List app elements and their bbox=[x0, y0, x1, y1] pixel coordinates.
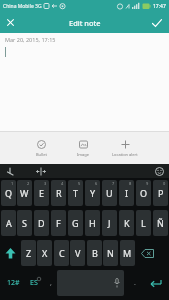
button[interactable]: J bbox=[102, 210, 117, 236]
staticText: A bbox=[6, 217, 12, 229]
staticText: Y bbox=[90, 187, 96, 199]
staticText: Z bbox=[26, 247, 32, 259]
button[interactable]: Q bbox=[1, 180, 16, 206]
button[interactable] bbox=[145, 12, 169, 33]
staticText: H bbox=[89, 217, 96, 229]
staticText: China Mobile 3G bbox=[3, 3, 42, 10]
button[interactable]: 12# bbox=[2, 270, 24, 296]
button[interactable]: Bullet bbox=[20, 132, 62, 164]
button[interactable]: X bbox=[37, 240, 52, 266]
button[interactable]: Y bbox=[85, 180, 100, 206]
staticText: G bbox=[72, 217, 79, 229]
button[interactable]: M bbox=[120, 240, 135, 266]
button[interactable]: T bbox=[68, 180, 83, 206]
button[interactable]: Image bbox=[62, 132, 104, 164]
staticText: B bbox=[92, 247, 98, 259]
button[interactable]: ES bbox=[24, 270, 44, 296]
staticText: 4 bbox=[61, 181, 64, 186]
button[interactable] bbox=[6, 167, 15, 176]
staticText: O bbox=[140, 187, 148, 199]
staticText: Image bbox=[77, 152, 90, 157]
button[interactable]: D bbox=[34, 210, 49, 236]
staticText: D bbox=[38, 217, 45, 229]
staticText: Edit note bbox=[69, 18, 101, 28]
button[interactable]: R bbox=[51, 180, 66, 206]
staticText: 8 bbox=[129, 181, 132, 186]
staticText: N bbox=[107, 247, 114, 259]
staticText: U bbox=[106, 187, 113, 199]
staticText: R bbox=[56, 187, 62, 199]
staticText: M bbox=[123, 247, 132, 259]
button[interactable]: Ñ bbox=[153, 210, 168, 236]
staticText: X bbox=[42, 247, 48, 259]
button[interactable] bbox=[0, 240, 20, 266]
button[interactable]: W bbox=[17, 180, 32, 206]
button[interactable]: O bbox=[136, 180, 151, 206]
staticText: I bbox=[125, 187, 129, 199]
staticText: , bbox=[50, 278, 52, 288]
staticText: 1 bbox=[11, 181, 14, 186]
staticText: K bbox=[124, 217, 130, 229]
staticText: 12# bbox=[7, 278, 20, 288]
staticText: 17:47 bbox=[153, 3, 166, 10]
staticText: E bbox=[39, 187, 45, 199]
staticText: Bullet bbox=[36, 152, 47, 157]
button[interactable]: I bbox=[119, 180, 134, 206]
button[interactable] bbox=[0, 12, 21, 33]
button[interactable] bbox=[155, 167, 164, 176]
staticText: Location alert bbox=[112, 152, 138, 157]
button[interactable]: L bbox=[136, 210, 151, 236]
button[interactable] bbox=[36, 167, 46, 176]
button[interactable]: V bbox=[70, 240, 85, 266]
button[interactable]: K bbox=[119, 210, 134, 236]
staticText: V bbox=[75, 247, 81, 259]
button[interactable]: Location alert bbox=[104, 132, 146, 164]
staticText: . bbox=[134, 278, 136, 288]
button[interactable]: G bbox=[68, 210, 83, 236]
staticText: W bbox=[20, 187, 29, 199]
staticText: 2 bbox=[27, 181, 30, 186]
button[interactable]: H bbox=[85, 210, 100, 236]
staticText: 7 bbox=[112, 181, 115, 186]
button[interactable]: F bbox=[51, 210, 66, 236]
staticText: C bbox=[59, 247, 65, 259]
button[interactable] bbox=[57, 270, 124, 296]
staticText: ES bbox=[30, 278, 38, 288]
button[interactable]: A bbox=[1, 210, 16, 236]
button[interactable] bbox=[137, 240, 157, 266]
button[interactable]: , bbox=[46, 270, 56, 296]
staticText: S bbox=[22, 217, 27, 229]
staticText: J bbox=[108, 217, 111, 229]
staticText: T bbox=[73, 187, 79, 199]
staticText: Ñ bbox=[157, 217, 164, 229]
button[interactable]: N bbox=[103, 240, 118, 266]
staticText: F bbox=[56, 217, 61, 229]
staticText: 0 bbox=[163, 181, 166, 186]
button[interactable] bbox=[146, 270, 166, 296]
staticText: 3 bbox=[44, 181, 47, 186]
button[interactable]: E bbox=[34, 180, 49, 206]
staticText: L bbox=[141, 217, 146, 229]
staticText: 6 bbox=[95, 181, 98, 186]
staticText: P bbox=[158, 187, 164, 199]
staticText: Mar 20, 2015, 17:15 bbox=[5, 36, 56, 43]
button[interactable]: Z bbox=[21, 240, 36, 266]
button[interactable]: U bbox=[102, 180, 117, 206]
button[interactable]: P bbox=[153, 180, 168, 206]
staticText: 5 bbox=[78, 181, 81, 186]
button[interactable]: . bbox=[126, 270, 144, 296]
button[interactable]: S bbox=[17, 210, 32, 236]
button[interactable]: C bbox=[54, 240, 69, 266]
button[interactable]: B bbox=[87, 240, 102, 266]
staticText: Q bbox=[5, 187, 13, 199]
staticText: 9 bbox=[146, 181, 149, 186]
